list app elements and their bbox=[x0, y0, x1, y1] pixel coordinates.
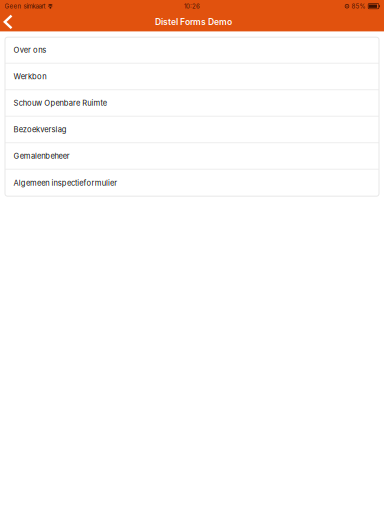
button[interactable]: Werkbon bbox=[5, 64, 379, 90]
staticText: Schouw Openbare Ruimte bbox=[14, 98, 107, 108]
button[interactable]: Back bbox=[0, 12, 22, 31]
button[interactable]: Gemalenbeheer bbox=[5, 143, 379, 170]
staticText: Bezoekverslag bbox=[14, 125, 67, 134]
staticText: 10:26 bbox=[184, 2, 200, 10]
button[interactable]: Schouw Openbare Ruimte bbox=[5, 90, 379, 117]
staticText: Geen simkaart bbox=[5, 2, 46, 10]
staticText: 85% bbox=[352, 2, 366, 10]
button[interactable]: Bezoekverslag bbox=[5, 117, 379, 143]
staticText: Over ons bbox=[14, 45, 46, 55]
staticText: Algemeen inspectieformulier bbox=[14, 178, 117, 188]
staticText: Distel Forms Demo bbox=[155, 17, 232, 27]
button[interactable]: Algemeen inspectieformulier bbox=[5, 170, 379, 196]
staticText: Werkbon bbox=[14, 72, 46, 81]
staticText: Gemalenbeheer bbox=[14, 151, 70, 161]
button[interactable]: Over ons bbox=[5, 37, 379, 64]
